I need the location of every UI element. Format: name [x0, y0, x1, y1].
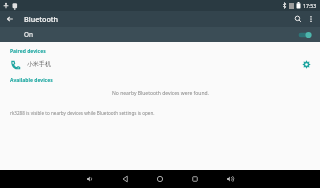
staticText: Bluetooth [24, 14, 59, 24]
button[interactable]: On [0, 27, 320, 42]
button[interactable]: Volume down [82, 171, 98, 187]
staticText: On [24, 30, 33, 39]
staticText: rk3288 is visible to nearby devices whil… [10, 110, 155, 116]
button[interactable]: Home [152, 171, 168, 187]
button[interactable]: Device settings [300, 58, 313, 71]
button[interactable]: Search [291, 12, 305, 26]
button[interactable]: More options [305, 13, 317, 25]
staticText: 17:53 [303, 2, 317, 9]
button[interactable]: Back [117, 171, 133, 187]
button[interactable]: Recents [187, 171, 203, 187]
button[interactable]: 小米手机 [0, 56, 320, 72]
button[interactable]: Bluetooth toggle [297, 30, 313, 40]
staticText: Available devices [10, 77, 53, 84]
staticText: Paired devices [10, 48, 46, 55]
staticText: 小米手机 [27, 60, 51, 68]
staticText: No nearby Bluetooth devices were found. [112, 90, 209, 97]
button[interactable]: Back [3, 12, 17, 26]
button[interactable]: Volume up [222, 171, 238, 187]
